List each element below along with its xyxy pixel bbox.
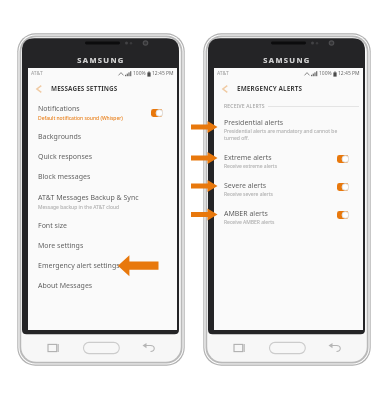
staticText: Quick responses: [38, 152, 93, 162]
staticText: RECEIVE ALERTS: [224, 103, 265, 110]
button[interactable]: Toggle: [337, 154, 349, 164]
button[interactable]: Presidential alerts: [214, 115, 363, 150]
button[interactable]: Notifications: [28, 98, 177, 127]
button[interactable]: More settings: [28, 236, 177, 256]
staticText: SAMSUNG: [17, 55, 185, 65]
button[interactable]: Navigate up: [33, 79, 45, 98]
staticText: Severe alerts: [224, 181, 267, 191]
staticText: AT&T: [31, 70, 43, 77]
staticText: MESSAGES SETTINGS: [51, 84, 118, 93]
button[interactable]: About Messages: [28, 276, 177, 296]
staticText: Emergency alert settings: [38, 261, 120, 271]
staticText: Block messages: [38, 172, 91, 182]
button[interactable]: Block messages: [28, 167, 177, 187]
button[interactable]: Font size: [28, 216, 177, 236]
staticText: Notifications: [38, 104, 80, 114]
button[interactable]: Severe alerts: [214, 178, 363, 206]
staticText: Presidential alerts are mandatory and ca…: [224, 128, 338, 141]
button[interactable]: AMBER alerts: [214, 206, 363, 234]
staticText: Backgrounds: [38, 132, 82, 142]
staticText: Message backup in the AT&T cloud: [38, 204, 120, 211]
staticText: SAMSUNG: [203, 55, 371, 65]
button[interactable]: AT&T Messages Backup & Sync: [28, 187, 177, 216]
staticText: AT&T: [217, 70, 229, 77]
button[interactable]: Toggle: [337, 182, 349, 192]
staticText: 100%: [133, 70, 146, 77]
button[interactable]: Extreme alerts: [214, 150, 363, 178]
staticText: About Messages: [38, 281, 93, 291]
staticText: AMBER alerts: [224, 209, 268, 219]
staticText: Extreme alerts: [224, 153, 272, 163]
button[interactable]: Navigate up: [219, 79, 231, 98]
staticText: 12:45 PM: [338, 70, 360, 77]
button[interactable]: Backgrounds: [28, 127, 177, 147]
button[interactable]: Toggle: [337, 210, 349, 220]
staticText: 100%: [319, 70, 332, 77]
staticText: Receive extreme alerts: [224, 163, 278, 170]
staticText: Receive severe alerts: [224, 191, 273, 198]
staticText: Receive AMBER alerts: [224, 219, 275, 226]
staticText: Default notification sound (Whisper): [38, 115, 123, 122]
button[interactable]: Toggle: [151, 108, 163, 118]
staticText: Presidential alerts: [224, 118, 284, 128]
staticText: Font size: [38, 221, 67, 231]
staticText: EMERGENCY ALERTS: [237, 84, 303, 93]
staticText: 12:45 PM: [152, 70, 174, 77]
button[interactable]: Emergency alert settings: [28, 256, 177, 276]
button[interactable]: Quick responses: [28, 147, 177, 167]
staticText: AT&T Messages Backup & Sync: [38, 193, 139, 203]
staticText: More settings: [38, 241, 84, 251]
